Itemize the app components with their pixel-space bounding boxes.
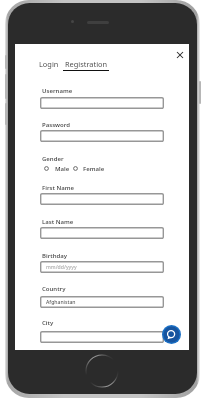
staticText: Registration <box>65 59 108 69</box>
staticText: Last Name <box>42 218 74 226</box>
button[interactable]: Close <box>173 48 187 62</box>
button[interactable]: Afghanistan <box>40 296 164 308</box>
staticText: mm/dd/yyyy <box>46 264 77 271</box>
button[interactable]: Male <box>44 165 70 171</box>
staticText: Login <box>39 59 59 69</box>
button[interactable]: Registration <box>63 59 109 71</box>
button[interactable] <box>40 97 164 109</box>
staticText: Female <box>83 165 105 171</box>
button[interactable] <box>40 193 164 205</box>
button[interactable] <box>40 130 164 142</box>
staticText: First Name <box>42 184 75 192</box>
button[interactable] <box>40 331 164 343</box>
button[interactable]: mm/dd/yyyy <box>40 261 164 273</box>
staticText: City <box>42 319 54 327</box>
staticText: Male <box>55 165 70 171</box>
staticText: Afghanistan <box>46 299 76 306</box>
staticText: Password <box>42 121 71 129</box>
button[interactable]: Login <box>37 59 61 71</box>
button[interactable]: Chat <box>162 325 181 344</box>
staticText: Username <box>42 87 73 95</box>
button[interactable]: Female <box>73 165 105 171</box>
staticText: Country <box>42 285 66 293</box>
staticText: Birthday <box>42 252 68 260</box>
button[interactable] <box>40 227 164 239</box>
staticText: Gender <box>42 155 64 163</box>
